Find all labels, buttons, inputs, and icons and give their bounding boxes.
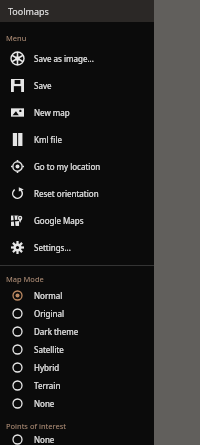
button[interactable]: Original — [0, 304, 154, 322]
staticText: Kml file — [34, 134, 62, 145]
staticText: Satellite — [34, 344, 64, 355]
button[interactable]: Reset orientation — [0, 180, 154, 207]
staticText: Hybrid — [34, 362, 60, 373]
other: Kml file — [11, 133, 24, 146]
other: Save — [11, 79, 24, 92]
staticText: Terrain — [34, 380, 61, 391]
button[interactable]: Save — [0, 72, 154, 99]
staticText: Points of interest — [6, 421, 66, 431]
other: Go to my location — [11, 160, 24, 173]
button[interactable]: Kml file — [0, 126, 154, 153]
staticText: Menu — [6, 33, 27, 43]
staticText: Normal — [34, 290, 63, 301]
staticText: Save as image... — [34, 53, 94, 64]
staticText: Toolmaps — [8, 5, 49, 17]
button[interactable]: New map — [0, 99, 154, 126]
button[interactable]: None — [0, 433, 154, 445]
staticText: Dark theme — [34, 326, 79, 337]
button[interactable]: Save as image — [0, 45, 154, 72]
other: New map — [11, 106, 24, 119]
staticText: Save — [34, 80, 52, 91]
button[interactable]: Google Maps — [0, 207, 154, 234]
button[interactable]: Satellite — [0, 340, 154, 358]
button[interactable]: Dark theme — [0, 322, 154, 340]
staticText: None — [34, 398, 55, 409]
staticText: Go to my location — [34, 161, 101, 172]
button[interactable]: Terrain — [0, 376, 154, 394]
button[interactable]: None — [0, 394, 154, 412]
other: Save as image — [11, 52, 24, 65]
button[interactable]: Settings — [0, 234, 154, 261]
staticText: Original — [34, 308, 65, 319]
staticText: Map Mode — [6, 274, 44, 284]
other: Google Maps — [11, 214, 24, 227]
staticText: None — [34, 434, 55, 445]
staticText: Reset orientation — [34, 188, 99, 199]
button[interactable]: Normal — [0, 286, 154, 304]
staticText: New map — [34, 107, 70, 118]
other: Reset orientation — [11, 187, 24, 200]
staticText: Google Maps — [34, 215, 84, 226]
other: Settings — [11, 241, 24, 254]
button[interactable]: Go to my location — [0, 153, 154, 180]
staticText: Settings... — [34, 242, 71, 253]
button[interactable]: Hybrid — [0, 358, 154, 376]
